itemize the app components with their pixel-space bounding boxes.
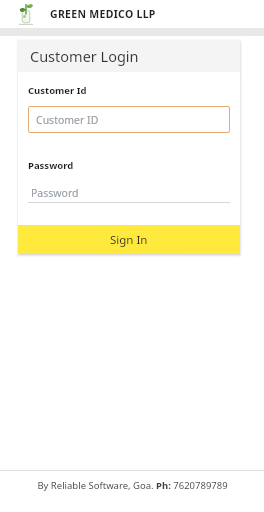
staticText: GREEN MEDICO LLP [50, 7, 156, 21]
staticText: By Reliable Software, Goa. Ph: 762078978… [37, 479, 228, 492]
button[interactable]: Sign In [18, 225, 240, 254]
button[interactable]: Password [28, 184, 230, 203]
staticText: Customer Login [30, 46, 139, 66]
button[interactable]: Customer ID [28, 106, 230, 133]
other: Green Medico logo [18, 3, 34, 25]
staticText: Customer ID [36, 113, 99, 127]
staticText: Customer Id [28, 84, 87, 97]
staticText: Password [31, 186, 79, 200]
staticText: Sign In [110, 232, 148, 248]
staticText: Password [28, 159, 74, 172]
